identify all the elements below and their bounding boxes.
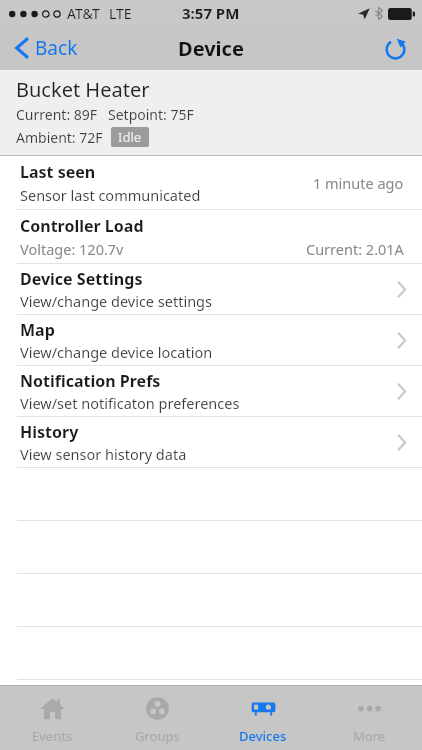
staticText: View sensor history data (20, 444, 187, 464)
staticText: Sensor last communicated (20, 185, 201, 205)
staticText: Current: 89F (16, 105, 98, 124)
staticText: Controller Load (20, 215, 144, 237)
button[interactable]: Notification Prefs (0, 366, 422, 416)
staticText: View/change device location (20, 342, 213, 362)
button[interactable]: Controller Load (0, 210, 422, 263)
staticText: Idle (118, 128, 142, 146)
staticText: Ambient: 72F (16, 128, 103, 147)
staticText: Current: 2.01A (306, 239, 404, 259)
staticText: Map (20, 319, 55, 341)
staticText: Device (178, 35, 244, 62)
staticText: Back (35, 35, 78, 61)
button[interactable]: Last seen (0, 156, 422, 209)
staticText: View/change device settings (20, 291, 212, 311)
staticText: Device Settings (20, 268, 143, 290)
button[interactable]: Refresh (380, 33, 410, 63)
button[interactable]: History (0, 417, 422, 467)
staticText: AT&T (67, 4, 100, 23)
staticText: LTE (109, 4, 132, 23)
staticText: More (353, 727, 386, 745)
button[interactable]: Device Settings (0, 264, 422, 314)
staticText: History (20, 421, 79, 443)
staticText: 3:57 PM (182, 3, 240, 23)
staticText: Setpoint: 75F (108, 105, 194, 124)
staticText: View/set notificaton preferences (20, 393, 240, 413)
staticText: Events (32, 727, 73, 745)
button[interactable]: Back (10, 29, 84, 67)
button[interactable]: Devices (210, 686, 316, 750)
staticText: Last seen (20, 161, 96, 183)
staticText: Voltage: 120.7v (20, 239, 124, 259)
button[interactable]: Map (0, 315, 422, 365)
button[interactable]: Events (0, 686, 105, 750)
staticText: Devices (239, 727, 287, 745)
button[interactable]: Groups (105, 686, 210, 750)
staticText: Bucket Heater (16, 76, 150, 103)
staticText: 1 minute ago (313, 173, 404, 193)
staticText: Notification Prefs (20, 370, 161, 392)
staticText: Groups (135, 727, 180, 745)
button[interactable]: More (316, 686, 422, 750)
